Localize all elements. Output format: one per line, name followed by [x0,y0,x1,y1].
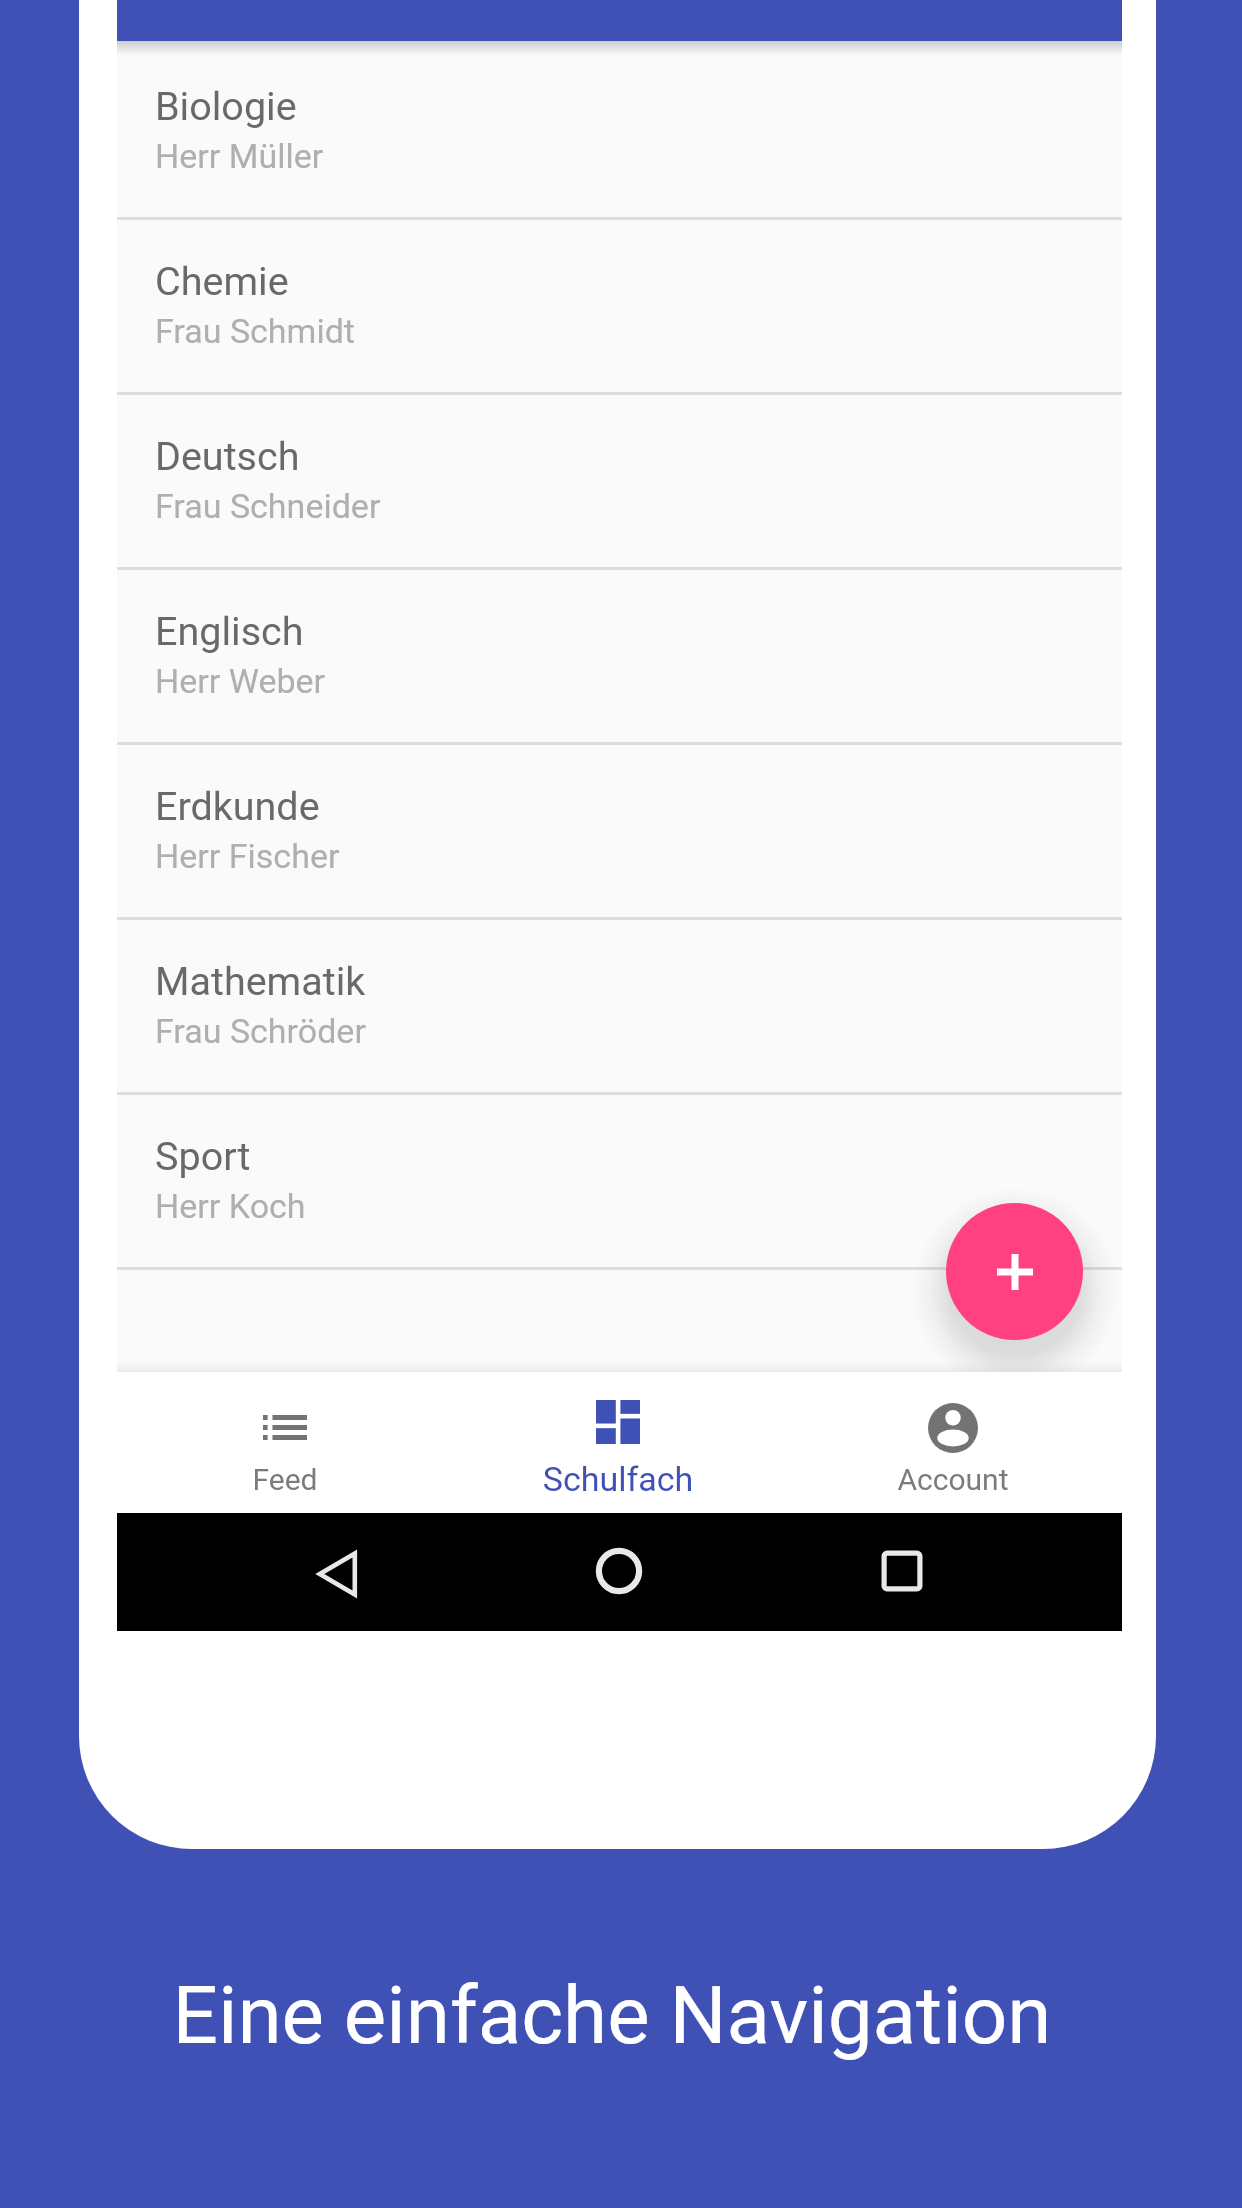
staticText: Sport [155,1133,251,1179]
staticText: Biologie [155,83,297,129]
staticText: Herr Fischer [155,836,340,876]
staticText: Schulfach [478,1459,758,1499]
staticText: Frau Schmidt [155,311,355,351]
button[interactable]: Deutsch [117,395,1122,567]
button[interactable]: Chemie [117,220,1122,392]
staticText: Erdkunde [155,783,320,829]
button[interactable]: Mathematik [117,920,1122,1092]
button[interactable]: Biologie [117,45,1122,217]
button[interactable]: Englisch [117,570,1122,742]
staticText: Deutsch [155,433,300,479]
button[interactable]: Fach hinzufügen [905,1165,1125,1385]
button[interactable]: Schulfach [478,1372,758,1513]
button[interactable]: Recents [842,1513,962,1631]
button[interactable]: Home [559,1513,679,1631]
staticText: Frau Schröder [155,1011,366,1051]
staticText: Chemie [155,258,289,304]
button[interactable]: Sport [117,1095,1122,1267]
button[interactable]: Erdkunde [117,745,1122,917]
button[interactable]: Account [813,1372,1093,1513]
staticText: Account [813,1462,1093,1497]
staticText: Mathematik [155,958,366,1004]
staticText: Eine einfache Navigation [0,1969,1233,2063]
staticText: Englisch [155,608,304,654]
button[interactable]: Feed [145,1372,425,1513]
staticText: Herr Müller [155,136,324,176]
staticText: Herr Weber [155,661,326,701]
staticText: Frau Schneider [155,486,381,526]
staticText: Herr Koch [155,1186,306,1226]
button[interactable]: Back [278,1513,398,1631]
staticText: Feed [145,1462,425,1497]
